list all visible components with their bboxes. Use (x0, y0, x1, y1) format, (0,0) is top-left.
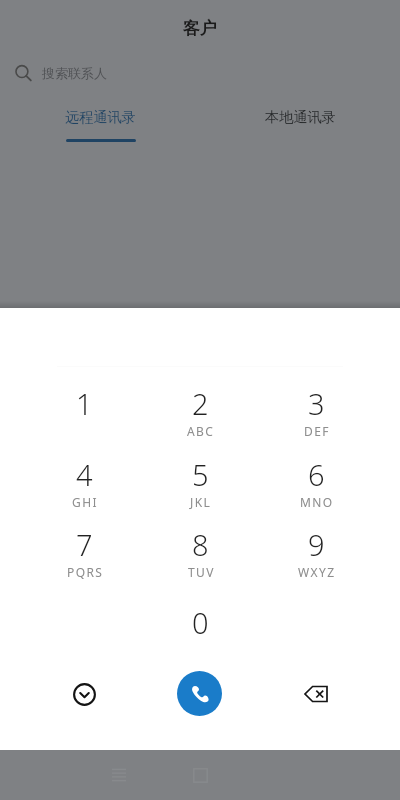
button[interactable]: 1 (26, 384, 142, 444)
staticText: 搜索联系人 (42, 65, 107, 81)
button[interactable]: 6 (258, 455, 374, 515)
staticText: 客户 (183, 18, 217, 39)
staticText: 7 (76, 525, 93, 564)
button[interactable]: 3 (258, 384, 374, 444)
button[interactable]: 5 (142, 455, 258, 515)
button[interactable]: Call (177, 671, 222, 716)
staticText: DEF (304, 423, 330, 439)
button[interactable]: 搜索联系人 (0, 55, 400, 91)
staticText: 3 (308, 384, 325, 423)
staticText: 本地通讯录 (265, 108, 336, 126)
button[interactable]: 9 (258, 525, 374, 585)
staticText: WXYZ (298, 564, 336, 580)
staticText: JKL (190, 494, 212, 510)
button[interactable]: Hide dialpad (60, 670, 108, 718)
staticText: 4 (76, 455, 93, 494)
button[interactable]: 2 (142, 384, 258, 444)
staticText: MNO (300, 494, 334, 510)
staticText: 0 (192, 603, 209, 642)
button[interactable]: 0 (142, 603, 258, 663)
button[interactable]: 本地通讯录 (200, 98, 400, 139)
button[interactable]: Backspace (292, 670, 340, 718)
staticText: 1 (76, 384, 93, 423)
staticText: PQRS (67, 564, 104, 580)
staticText: 8 (192, 525, 209, 564)
staticText: 9 (308, 525, 325, 564)
button[interactable]: 远程通讯录 (0, 98, 200, 142)
staticText: ABC (187, 423, 215, 439)
button[interactable]: 4 (26, 455, 142, 515)
staticText: TUV (188, 564, 215, 580)
staticText: 5 (192, 455, 209, 494)
staticText: 6 (308, 455, 325, 494)
staticText: GHI (72, 494, 98, 510)
button[interactable]: 8 (142, 525, 258, 585)
staticText: 远程通讯录 (65, 108, 136, 126)
button[interactable]: 7 (26, 525, 142, 585)
staticText: 2 (192, 384, 209, 423)
